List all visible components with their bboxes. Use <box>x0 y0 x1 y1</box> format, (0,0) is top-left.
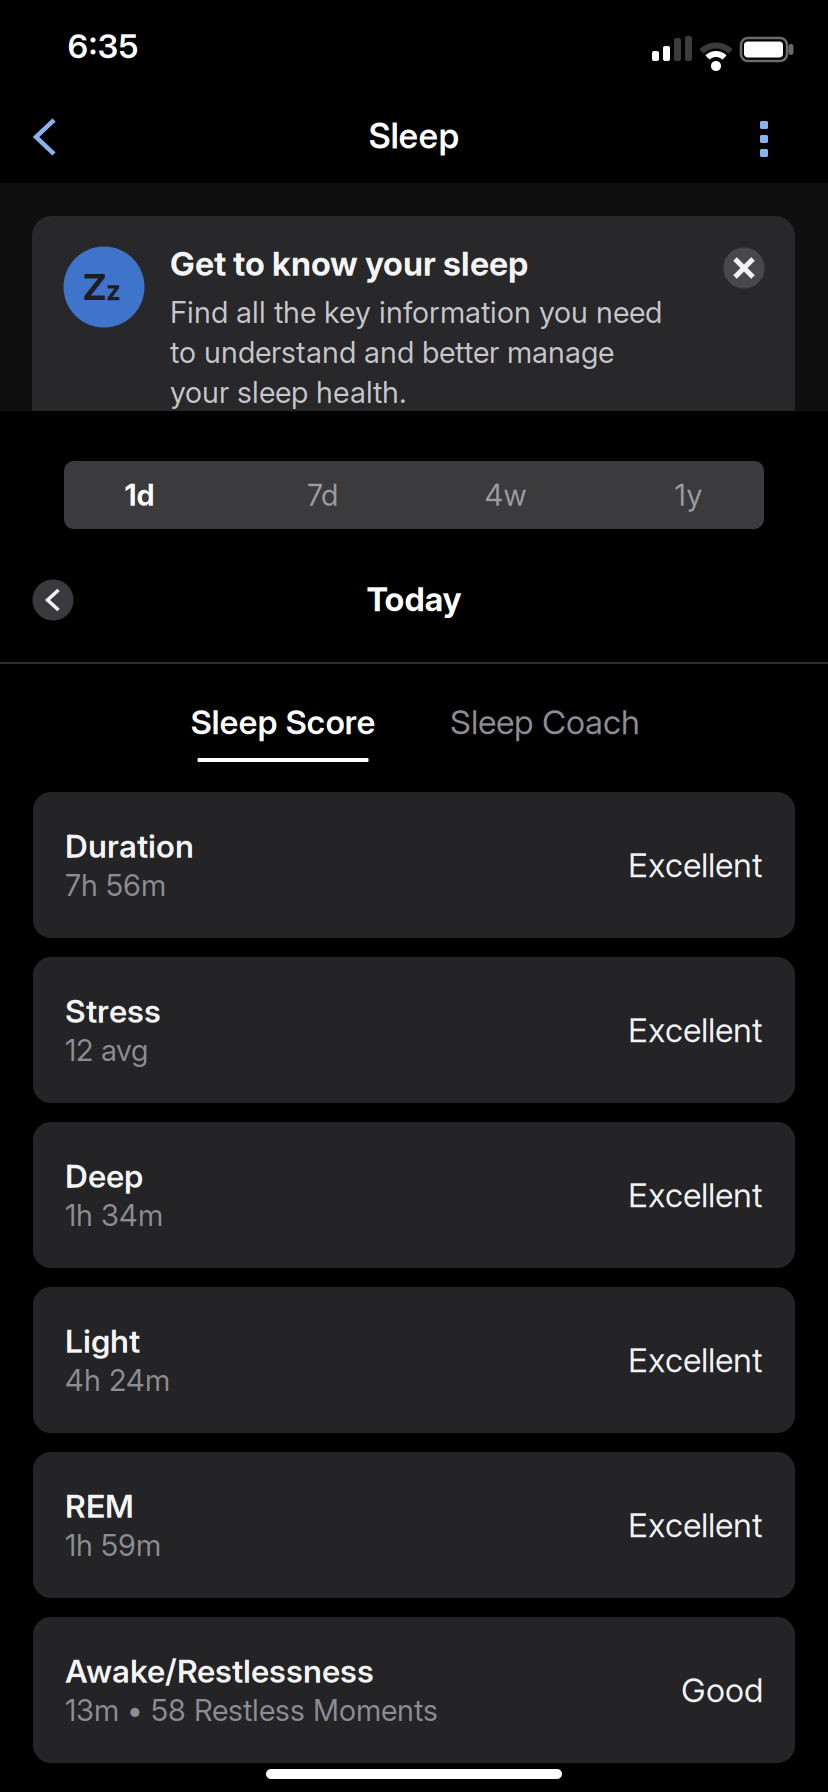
staticText: 4h 24m <box>65 1363 170 1398</box>
button[interactable]: Dismiss <box>723 247 764 288</box>
staticText: 13m • 58 Restless Moments <box>65 1693 438 1728</box>
staticText: 1y <box>674 478 702 512</box>
staticText: to understand and better manage <box>170 335 614 370</box>
staticText: Stress <box>65 992 161 1030</box>
staticText: 7d <box>307 478 338 512</box>
staticText: Z <box>83 266 106 308</box>
staticText: Excellent <box>628 1505 763 1545</box>
staticText: REM <box>65 1487 134 1525</box>
staticText: 1h 34m <box>65 1198 163 1233</box>
button[interactable]: Duration <box>33 792 795 938</box>
staticText: 7h 56m <box>65 868 166 903</box>
staticText: Duration <box>65 827 194 865</box>
button[interactable]: Awake/Restlessness <box>33 1617 795 1763</box>
staticText: Excellent <box>628 845 763 885</box>
staticText: 6:35 <box>67 26 138 66</box>
button[interactable]: 7d <box>235 461 410 529</box>
staticText: z <box>106 275 121 306</box>
button[interactable]: Previous day <box>32 579 73 620</box>
button[interactable]: Sleep Coach <box>430 674 660 769</box>
button[interactable]: Back <box>15 102 75 172</box>
button[interactable]: 1y <box>601 461 776 529</box>
staticText: Sleep Coach <box>450 702 640 742</box>
staticText: 1d <box>124 478 154 512</box>
staticText: your sleep health. <box>170 375 407 410</box>
staticText: Excellent <box>628 1175 763 1215</box>
staticText: Light <box>65 1322 140 1360</box>
staticText: Get to know your sleep <box>170 244 528 283</box>
staticText: Sleep Score <box>190 702 375 742</box>
button[interactable]: Light <box>33 1287 795 1433</box>
staticText: Sleep <box>368 116 459 156</box>
button[interactable]: 4w <box>418 461 593 529</box>
button[interactable]: More options <box>740 108 788 170</box>
button[interactable]: Sleep Score <box>168 674 398 769</box>
staticText: 12 avg <box>65 1033 148 1068</box>
button[interactable]: 1d <box>52 461 227 529</box>
staticText: Good <box>681 1670 763 1710</box>
button[interactable]: REM <box>33 1452 795 1598</box>
staticText: Awake/Restlessness <box>65 1652 374 1690</box>
staticText: 1h 59m <box>65 1528 161 1563</box>
staticText: Deep <box>65 1157 143 1195</box>
staticText: Find all the key information you need <box>170 295 662 330</box>
button[interactable]: Stress <box>33 957 795 1103</box>
staticText: Excellent <box>628 1340 763 1380</box>
button[interactable]: Deep <box>33 1122 795 1268</box>
staticText: Excellent <box>628 1010 763 1050</box>
staticText: Today <box>366 579 461 619</box>
staticText: 4w <box>484 478 526 512</box>
